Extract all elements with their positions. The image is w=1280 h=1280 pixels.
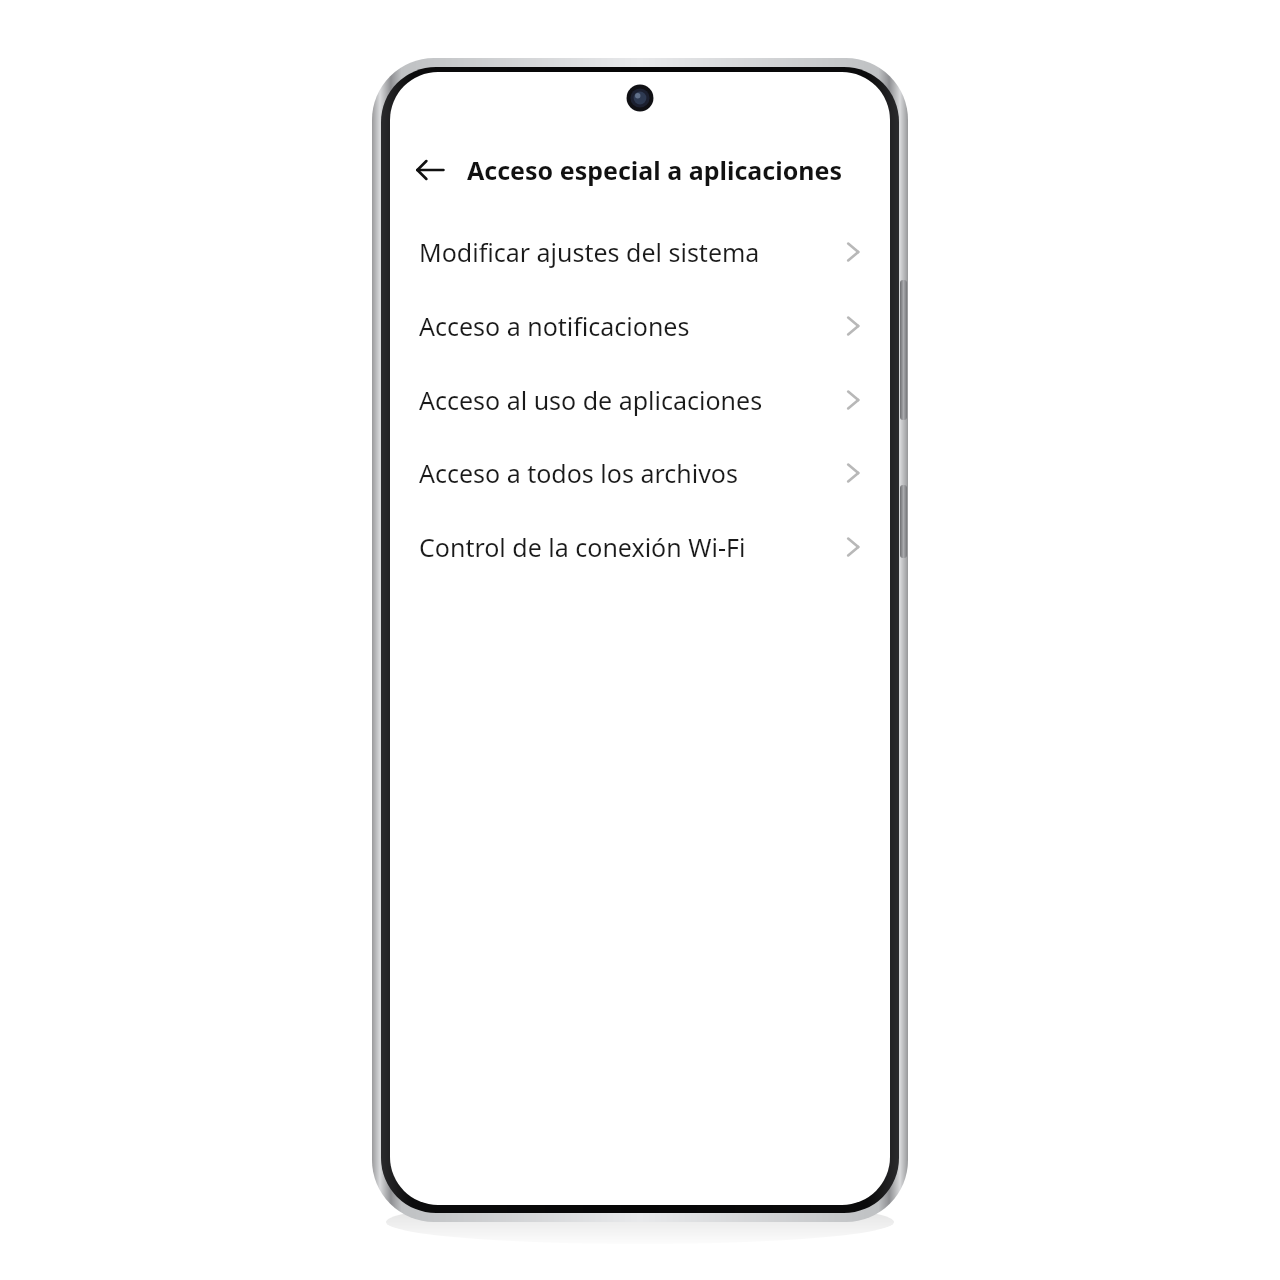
button[interactable]: Acceso a notificaciones [390, 289, 890, 363]
staticText: Acceso a todos los archivos [419, 456, 842, 490]
staticText: Acceso especial a aplicaciones [467, 153, 842, 187]
staticText: Acceso a notificaciones [419, 309, 842, 343]
staticText: Modificar ajustes del sistema [419, 235, 842, 269]
button[interactable]: Atrás [406, 146, 454, 194]
staticText: Control de la conexión Wi-Fi [419, 530, 842, 564]
button[interactable]: Modificar ajustes del sistema [390, 215, 890, 289]
button[interactable]: Control de la conexión Wi-Fi [390, 510, 890, 584]
button[interactable]: Acceso al uso de aplicaciones [390, 363, 890, 437]
button[interactable]: Acceso a todos los archivos [390, 436, 890, 510]
staticText: Acceso al uso de aplicaciones [419, 383, 842, 417]
